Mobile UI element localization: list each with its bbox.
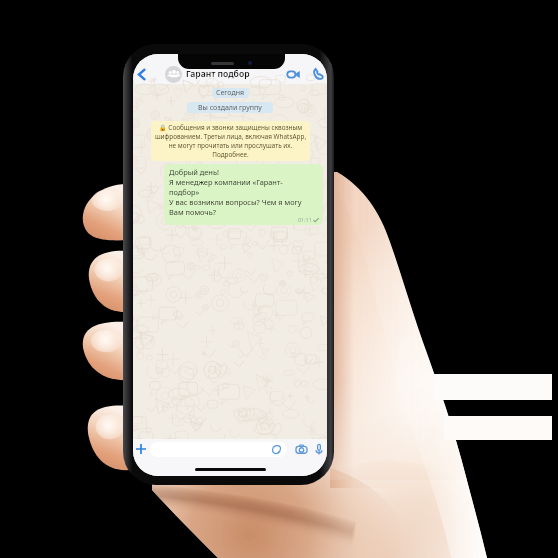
button[interactable]: Camera (296, 444, 307, 455)
button[interactable]: Video call (287, 68, 300, 81)
button[interactable]: Voice message (315, 444, 323, 455)
button[interactable]: Voice call (312, 68, 324, 80)
button[interactable]: Attach (135, 443, 147, 455)
button[interactable]: Stickers (272, 445, 282, 455)
button[interactable]: Stickers (150, 442, 287, 457)
staticText: 🔒 Сообщения и звонки защищены сквозным ш… (154, 123, 307, 159)
staticText: Гарант подбор (186, 68, 250, 80)
staticText: Вы создали группу (198, 103, 262, 113)
staticText: 01:11 (298, 216, 312, 223)
button[interactable]: Back (134, 67, 149, 82)
staticText: Сегодня (216, 88, 245, 98)
staticText: Добрый день! Я менеджер компании «Гарант… (169, 167, 302, 217)
